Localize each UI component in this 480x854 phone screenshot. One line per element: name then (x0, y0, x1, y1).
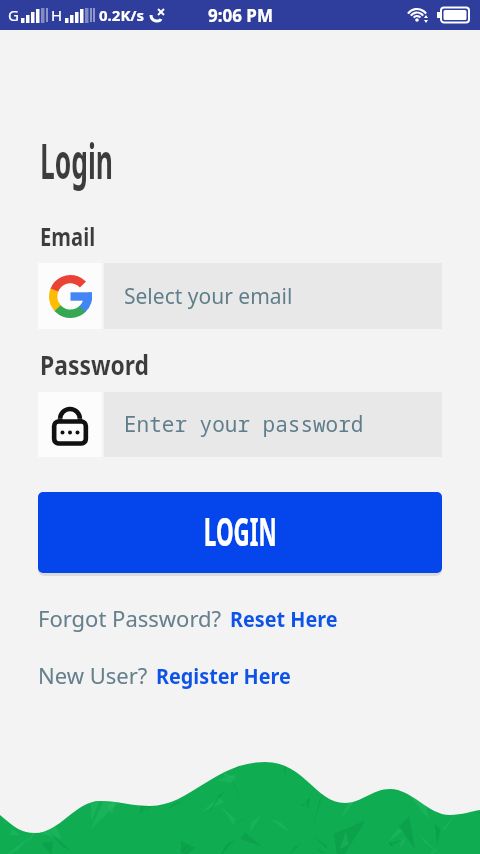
button[interactable]: Select your email (38, 263, 442, 329)
staticText: H (51, 5, 63, 25)
staticText: Login (40, 128, 113, 193)
button[interactable]: LOGIN (38, 492, 442, 573)
staticText: Register Here (156, 660, 291, 690)
button[interactable]: New User? (38, 660, 306, 690)
staticText: Enter your password (124, 410, 364, 439)
staticText: 0.2K/s (99, 5, 145, 25)
staticText: G (8, 5, 19, 25)
staticText: Forgot Password? (38, 603, 222, 633)
button[interactable]: Forgot Password? (38, 603, 350, 633)
staticText: 9:06 PM (208, 4, 273, 27)
staticText: Password (40, 347, 149, 382)
staticText: LOGIN (204, 503, 277, 557)
staticText: New User? (38, 660, 148, 690)
staticText: Select your email (124, 282, 293, 311)
staticText: Reset Here (230, 603, 338, 633)
button[interactable]: Enter your password (38, 392, 442, 457)
staticText: Email (40, 219, 96, 253)
